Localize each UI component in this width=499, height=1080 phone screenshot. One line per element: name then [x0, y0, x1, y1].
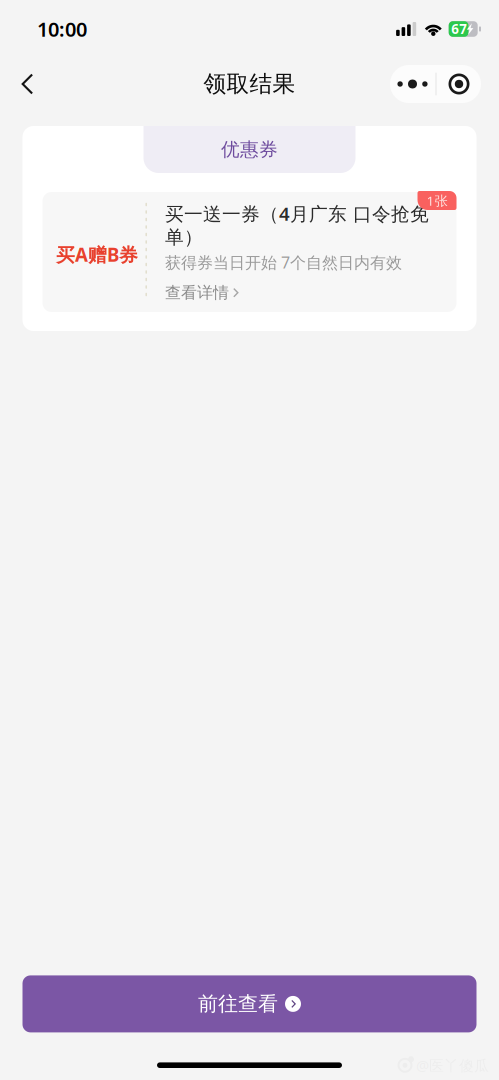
button[interactable]: 返回	[5, 62, 49, 106]
staticText: 前往查看	[198, 992, 278, 1016]
staticText: 买A赠B券	[56, 242, 138, 267]
staticText: 领取结果	[203, 70, 295, 98]
staticText: 10:00	[37, 16, 87, 42]
staticText: 优惠券	[221, 138, 278, 161]
staticText: 获得券当日开始 7个自然日内有效	[165, 252, 402, 273]
staticText: 67	[451, 20, 467, 38]
button[interactable]: 前往查看	[22, 975, 476, 1032]
staticText: 买一送一券（4月广东 口令抢免单）	[165, 201, 429, 249]
button[interactable]: 查看详情	[165, 283, 239, 303]
button[interactable]: 更多	[390, 65, 481, 103]
staticText: 查看详情	[165, 283, 229, 303]
staticText: 1张	[426, 192, 447, 209]
